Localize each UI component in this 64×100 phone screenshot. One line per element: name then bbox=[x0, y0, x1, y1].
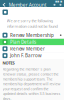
button[interactable]: Plan Details bbox=[0, 39, 64, 45]
staticText: We are sorry the following information c… bbox=[6, 18, 57, 29]
staticText: John F. Barrow bbox=[10, 52, 42, 59]
staticText: Renew Membership bbox=[10, 32, 54, 38]
staticText: NOTES bbox=[2, 60, 14, 66]
staticText: Regarding the member's plan renewal stat… bbox=[2, 67, 60, 100]
staticText: Renew Member bbox=[10, 46, 45, 52]
button[interactable]: Search bbox=[52, 3, 56, 7]
button[interactable]: Back bbox=[1, 3, 7, 7]
button[interactable]: Renew Membership bbox=[0, 32, 64, 38]
button[interactable]: John F. Barrow bbox=[0, 52, 64, 59]
staticText: Plan Details bbox=[10, 39, 36, 45]
staticText: ▪▪ ▪ bbox=[55, 0, 62, 3]
staticText: Member Account bbox=[9, 1, 47, 8]
button[interactable]: More bbox=[58, 3, 62, 7]
button[interactable]: Renew Member bbox=[0, 46, 64, 52]
